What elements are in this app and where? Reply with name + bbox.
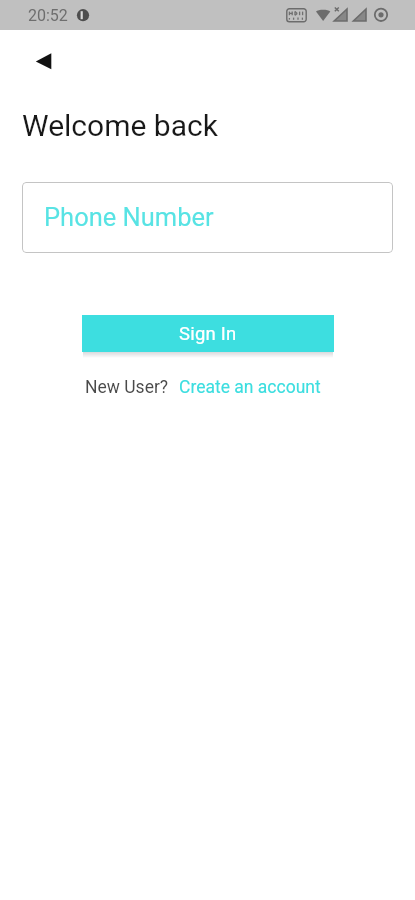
staticText: Phone Number bbox=[44, 202, 214, 232]
button[interactable]: Create an account bbox=[179, 377, 321, 398]
button[interactable]: Sign In bbox=[82, 315, 334, 352]
staticText: Create an account bbox=[179, 377, 321, 398]
staticText: Welcome back bbox=[22, 108, 218, 143]
staticText: New User? bbox=[85, 377, 169, 398]
button[interactable]: Back bbox=[28, 46, 59, 77]
staticText: 20:52 bbox=[28, 6, 68, 25]
staticText: Sign In bbox=[179, 323, 237, 345]
button[interactable]: Phone Number bbox=[22, 182, 393, 253]
